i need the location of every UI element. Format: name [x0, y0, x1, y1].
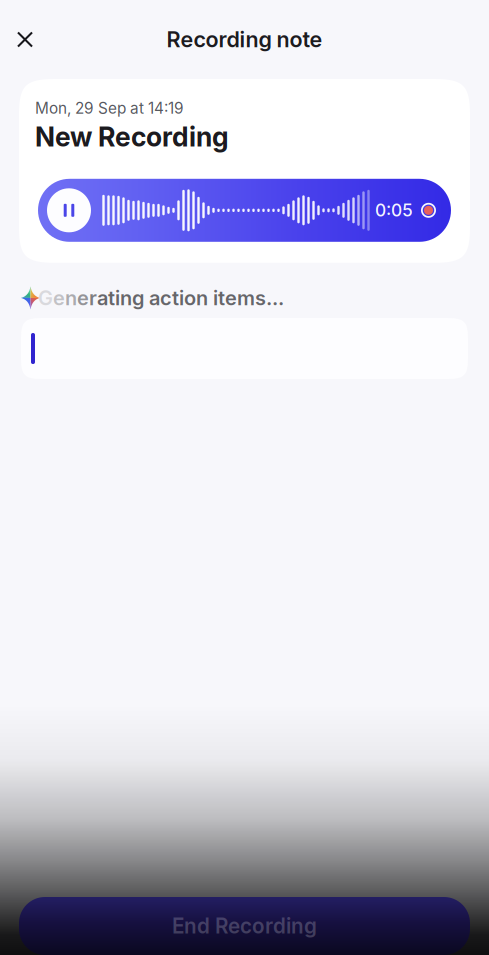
staticText: New Recording: [35, 121, 229, 153]
staticText: s: [255, 286, 266, 310]
staticText: o: [184, 286, 196, 310]
button[interactable]: Close: [3, 17, 47, 61]
button[interactable]: Pause: [47, 188, 91, 232]
staticText: .: [272, 286, 278, 310]
staticText: c: [160, 286, 172, 310]
staticText: m: [237, 286, 255, 310]
staticText: .: [278, 286, 284, 310]
staticText: e: [53, 286, 65, 310]
staticText: i: [213, 286, 218, 310]
staticText: n: [196, 286, 208, 310]
staticText: Mon, 29 Sep at 14:19: [35, 99, 184, 118]
staticText: t: [172, 286, 179, 310]
staticText: g: [132, 286, 144, 310]
staticText: Recording note: [166, 26, 322, 52]
staticText: r: [89, 286, 97, 310]
staticText: G: [38, 286, 53, 310]
staticText: e: [77, 286, 89, 310]
staticText: a: [149, 286, 160, 310]
staticText: End Recording: [172, 913, 317, 938]
staticText: t: [108, 286, 115, 310]
staticText: i: [179, 286, 184, 310]
staticText: 0:05: [375, 200, 413, 221]
staticText: t: [218, 286, 225, 310]
staticText: i: [115, 286, 120, 310]
staticText: n: [65, 286, 77, 310]
staticText: a: [97, 286, 108, 310]
button[interactable]: End Recording: [19, 897, 470, 955]
staticText: e: [225, 286, 237, 310]
staticText: .: [266, 286, 272, 310]
staticText: n: [120, 286, 132, 310]
